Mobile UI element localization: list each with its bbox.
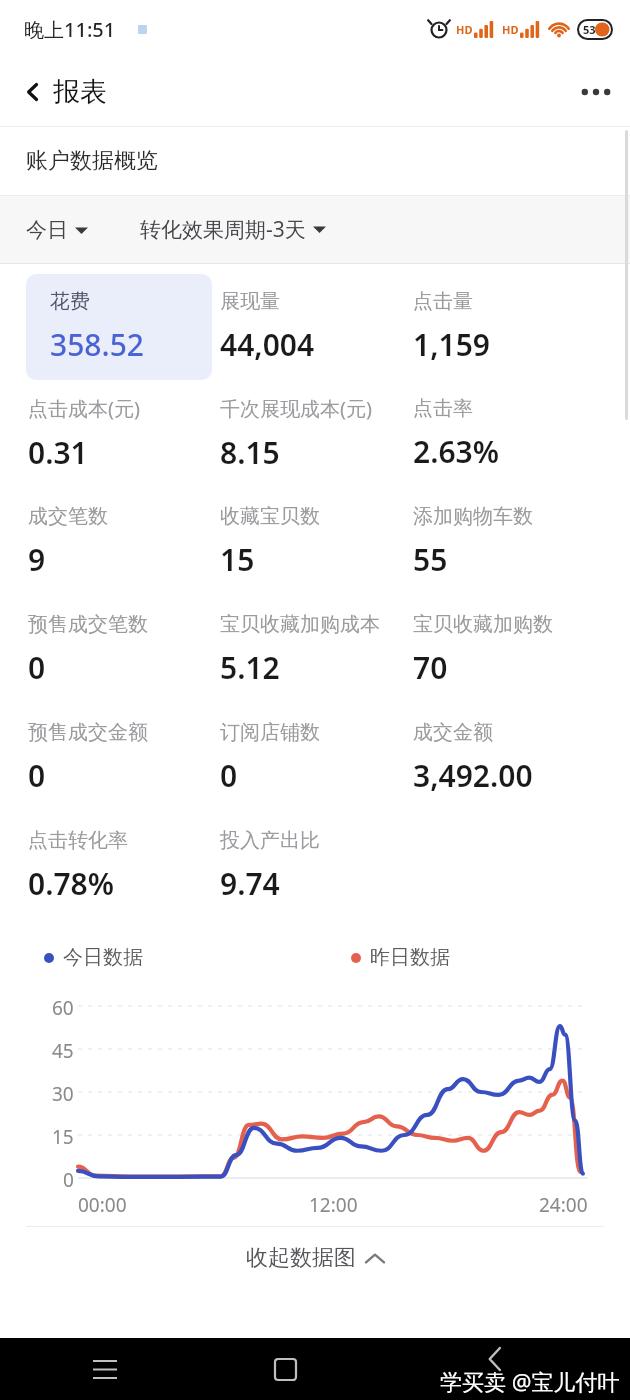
- staticText: 60: [52, 995, 74, 1021]
- button[interactable]: 今日: [26, 211, 88, 249]
- staticText: 1,159: [413, 324, 491, 365]
- staticText: 12:00: [309, 1192, 358, 1218]
- staticText: 报表: [53, 75, 107, 109]
- staticText: 15: [220, 539, 255, 580]
- button[interactable]: 报表: [0, 58, 110, 126]
- staticText: 8.15: [220, 432, 280, 473]
- staticText: 成交金额: [413, 720, 493, 745]
- staticText: 0.31: [28, 432, 88, 473]
- button[interactable]: 添加购物车数: [411, 488, 604, 596]
- staticText: 学买卖 @宝儿付叶: [440, 1366, 620, 1396]
- staticText: HD: [456, 22, 473, 37]
- staticText: 成交笔数: [28, 504, 108, 529]
- button[interactable]: 转化效果周期-3天: [140, 209, 326, 250]
- staticText: 2.63%: [413, 431, 500, 472]
- button[interactable]: 展现量: [218, 274, 411, 380]
- button[interactable]: Recent apps: [0, 1338, 210, 1400]
- staticText: 00:00: [78, 1192, 127, 1218]
- staticText: 宝贝收藏加购成本: [220, 612, 380, 637]
- staticText: 55: [413, 539, 448, 580]
- button[interactable]: Back: [360, 1338, 630, 1400]
- button[interactable]: 收起数据图: [0, 1227, 630, 1289]
- button[interactable]: 宝贝收藏加购成本: [218, 596, 411, 704]
- staticText: 添加购物车数: [413, 504, 533, 529]
- staticText: 点击量: [413, 289, 473, 314]
- staticText: 24:00: [539, 1192, 588, 1218]
- staticText: 53: [583, 22, 596, 37]
- button[interactable]: 点击成本(元): [26, 380, 218, 488]
- button[interactable]: 成交笔数: [26, 488, 218, 596]
- staticText: 点击成本(元): [28, 395, 140, 422]
- staticText: 收起数据图: [246, 1244, 356, 1272]
- staticText: 花费: [50, 289, 90, 314]
- button[interactable]: 预售成交金额: [26, 704, 218, 812]
- button[interactable]: 投入产出比: [218, 812, 411, 920]
- staticText: 0: [220, 755, 238, 796]
- button[interactable]: 花费: [26, 274, 212, 380]
- staticText: 收藏宝贝数: [220, 504, 320, 529]
- staticText: 0: [63, 1167, 74, 1193]
- staticText: 点击转化率: [28, 828, 128, 853]
- staticText: 转化效果周期-3天: [140, 215, 306, 244]
- staticText: 15: [52, 1124, 74, 1150]
- staticText: 今日数据: [63, 945, 143, 970]
- staticText: HD: [502, 22, 519, 37]
- button[interactable]: 订阅店铺数: [218, 704, 411, 812]
- staticText: 账户数据概览: [26, 147, 158, 175]
- button[interactable]: 点击量: [411, 274, 604, 380]
- button[interactable]: 收藏宝贝数: [218, 488, 411, 596]
- staticText: 点击率: [413, 396, 473, 421]
- staticText: 5.12: [220, 647, 280, 688]
- button[interactable]: More options: [562, 58, 630, 126]
- staticText: 千次展现成本(元): [220, 395, 372, 422]
- button[interactable]: 成交金额: [411, 704, 604, 812]
- button[interactable]: 今日数据: [44, 945, 143, 970]
- staticText: 70: [413, 647, 448, 688]
- staticText: 45: [52, 1038, 74, 1064]
- staticText: 358.52: [50, 324, 144, 365]
- staticText: 0.78%: [28, 863, 115, 904]
- button[interactable]: 宝贝收藏加购数: [411, 596, 604, 704]
- staticText: 展现量: [220, 289, 280, 314]
- staticText: 预售成交金额: [28, 720, 148, 745]
- staticText: 投入产出比: [220, 828, 320, 853]
- staticText: 0: [28, 755, 46, 796]
- button[interactable]: Home: [210, 1338, 360, 1400]
- staticText: 0: [28, 647, 46, 688]
- staticText: 宝贝收藏加购数: [413, 612, 553, 637]
- staticText: 3,492.00: [413, 755, 533, 796]
- button[interactable]: 点击转化率: [26, 812, 218, 920]
- staticText: 今日: [26, 217, 68, 243]
- staticText: 9.74: [220, 863, 280, 904]
- button[interactable]: 千次展现成本(元): [218, 380, 411, 488]
- button[interactable]: 昨日数据: [351, 945, 450, 970]
- staticText: 晚上11:51: [24, 16, 116, 43]
- button[interactable]: 预售成交笔数: [26, 596, 218, 704]
- button[interactable]: 点击率: [411, 380, 604, 488]
- staticText: 9: [28, 539, 46, 580]
- staticText: 30: [52, 1081, 74, 1107]
- staticText: 订阅店铺数: [220, 720, 320, 745]
- staticText: 预售成交笔数: [28, 612, 148, 637]
- staticText: 昨日数据: [370, 945, 450, 970]
- staticText: 44,004: [220, 324, 315, 365]
